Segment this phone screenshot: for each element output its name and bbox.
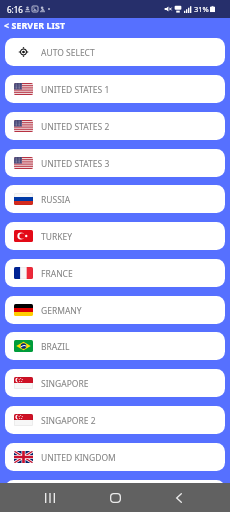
button[interactable]: Recent apps (36, 492, 64, 503)
staticText: UNITED STATES 2 (41, 121, 110, 133)
button[interactable]: NETHERLANDS (5, 480, 225, 484)
button[interactable]: Home (101, 492, 129, 503)
button[interactable]: < SERVER LIST (4, 20, 66, 32)
staticText: < SERVER LIST (4, 20, 66, 32)
button[interactable]: BRAZIL (5, 332, 225, 360)
staticText: 6:16 (7, 4, 23, 15)
staticText: FRANCE (41, 268, 73, 280)
staticText: UNITED KINGDOM (41, 452, 116, 464)
button[interactable]: FRANCE (5, 259, 225, 287)
button[interactable]: TURKEY (5, 222, 225, 250)
staticText: AUTO SELECT (41, 47, 95, 59)
staticText: TURKEY (41, 231, 73, 243)
staticText: UNITED STATES 3 (41, 158, 110, 170)
button[interactable]: GERMANY (5, 296, 225, 324)
staticText: BRAZIL (41, 341, 70, 353)
staticText: GERMANY (41, 305, 82, 317)
button[interactable]: UNITED STATES 1 (5, 75, 225, 103)
button[interactable]: AUTO SELECT (5, 38, 225, 66)
button[interactable]: Back (165, 492, 193, 503)
button[interactable]: UNITED STATES 2 (5, 112, 225, 140)
staticText: RUSSIA (41, 194, 71, 206)
button[interactable]: RUSSIA (5, 185, 225, 213)
button[interactable]: UNITED STATES 3 (5, 149, 225, 177)
staticText: SINGAPORE (41, 378, 89, 390)
staticText: UNITED STATES 1 (41, 84, 110, 96)
button[interactable]: SINGAPORE (5, 369, 225, 397)
button[interactable]: UNITED KINGDOM (5, 443, 225, 471)
button[interactable]: SINGAPORE 2 (5, 406, 225, 434)
staticText: 31% (194, 4, 209, 14)
staticText: SINGAPORE 2 (41, 415, 96, 427)
